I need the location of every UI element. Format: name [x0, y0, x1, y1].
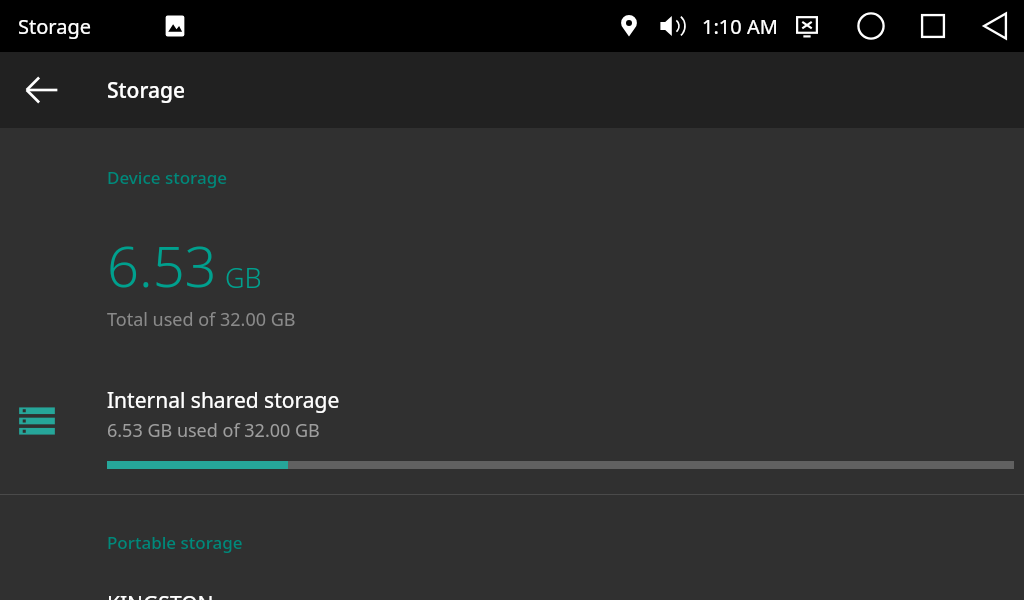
staticText: 6.53 GB used of 32.00 GB — [107, 418, 320, 443]
staticText: 6.53 — [107, 227, 217, 303]
staticText: Storage — [18, 13, 91, 40]
button[interactable]: Recents — [912, 5, 954, 47]
button[interactable]: Back — [974, 5, 1016, 47]
button[interactable]: Home — [850, 5, 892, 47]
staticText: Internal shared storage — [107, 386, 340, 415]
staticText: KINGSTON — [107, 590, 214, 600]
staticText: GB — [225, 259, 262, 296]
staticText: Storage — [107, 76, 185, 105]
staticText: Portable storage — [107, 531, 243, 554]
staticText: 1:10 AM — [702, 13, 778, 40]
button[interactable]: Navigate up — [18, 66, 66, 114]
staticText: Device storage — [107, 166, 227, 189]
staticText: Total used of 32.00 GB — [107, 307, 296, 332]
button[interactable]: Internal shared storage — [0, 376, 1024, 486]
